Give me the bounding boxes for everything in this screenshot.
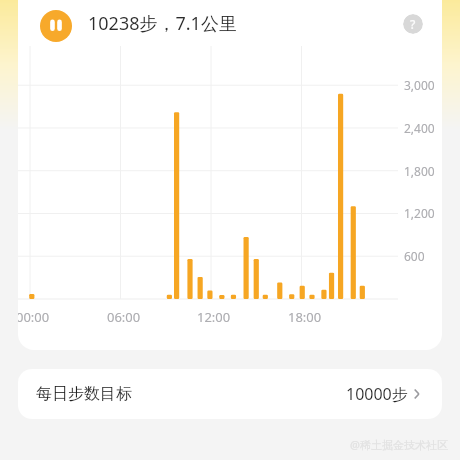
button[interactable]: 每日步数目标 xyxy=(18,369,442,419)
staticText: 1,200 xyxy=(404,205,435,221)
staticText: 每日步数目标 xyxy=(36,384,132,404)
staticText: 10238步，7.1公里 xyxy=(88,11,237,36)
staticText: @稀土掘金技术社区 xyxy=(350,437,448,452)
staticText: 3,000 xyxy=(404,77,435,93)
staticText: 600 xyxy=(404,248,425,264)
staticText: ? xyxy=(410,16,416,32)
staticText: 1,800 xyxy=(404,163,435,179)
staticText: 00:00 xyxy=(18,308,50,326)
button[interactable]: Help xyxy=(403,14,423,34)
staticText: 10000步 xyxy=(346,383,408,405)
staticText: 2,400 xyxy=(404,120,435,136)
staticText: 06:00 xyxy=(107,308,141,326)
staticText: 12:00 xyxy=(197,308,231,326)
staticText: 18:00 xyxy=(288,308,322,326)
